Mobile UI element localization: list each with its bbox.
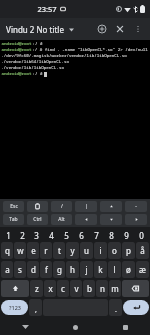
staticText: / bbox=[61, 203, 63, 210]
staticText: a bbox=[5, 264, 10, 275]
button[interactable]: Up bbox=[100, 201, 122, 212]
button[interactable]: . bbox=[109, 299, 122, 316]
button[interactable]: e bbox=[27, 242, 39, 259]
button[interactable]: d bbox=[27, 261, 39, 278]
button[interactable]: v bbox=[70, 280, 82, 297]
staticText: 23:57 bbox=[37, 4, 57, 14]
button[interactable]: 7 bbox=[89, 228, 104, 242]
button[interactable]: Paste bbox=[27, 201, 48, 212]
button[interactable]: 3 bbox=[29, 228, 44, 242]
button[interactable]: r bbox=[40, 242, 52, 259]
button[interactable]: i bbox=[94, 242, 107, 259]
staticText: Alt bbox=[58, 216, 65, 223]
staticText: i bbox=[99, 245, 102, 256]
button[interactable]: s bbox=[14, 261, 26, 278]
staticText: ?123 bbox=[9, 304, 21, 311]
button[interactable]: 0 bbox=[134, 228, 149, 242]
button[interactable]: - bbox=[125, 201, 147, 212]
button[interactable]: t bbox=[53, 242, 65, 259]
staticText: 3 bbox=[34, 230, 39, 241]
staticText: 1 bbox=[6, 230, 11, 241]
button[interactable]: 1 bbox=[1, 228, 15, 242]
button[interactable]: c bbox=[57, 280, 69, 297]
staticText: l bbox=[113, 264, 116, 275]
button[interactable]: m bbox=[109, 280, 121, 297]
button[interactable]: o bbox=[108, 242, 121, 259]
button[interactable]: w bbox=[14, 242, 26, 259]
staticText: o bbox=[112, 245, 117, 256]
button[interactable]: h bbox=[66, 261, 79, 278]
button[interactable]: k bbox=[94, 261, 107, 278]
button[interactable]: g bbox=[53, 261, 65, 278]
button[interactable]: , bbox=[29, 299, 42, 316]
staticText: j bbox=[85, 264, 88, 275]
button[interactable]: Tab bbox=[3, 214, 24, 225]
staticText: r bbox=[44, 245, 48, 256]
button[interactable]: a bbox=[1, 261, 13, 278]
button[interactable]: Close bbox=[111, 20, 129, 38]
button[interactable]: 5 bbox=[59, 228, 74, 242]
button[interactable]: 4 bbox=[44, 228, 59, 242]
staticText: y bbox=[70, 245, 75, 256]
staticText: . bbox=[115, 305, 117, 315]
staticText: 5 bbox=[64, 230, 69, 241]
button[interactable]: Ctrl bbox=[27, 214, 48, 225]
staticText: x bbox=[48, 283, 53, 294]
staticText: d bbox=[31, 264, 36, 275]
button[interactable]: Recents bbox=[100, 319, 150, 335]
button[interactable]: x bbox=[44, 280, 56, 297]
button[interactable]: More options bbox=[129, 20, 147, 38]
staticText: :/ # bbox=[32, 71, 43, 77]
button[interactable]: Vindu 2 No title bbox=[0, 20, 79, 39]
staticText: v bbox=[74, 283, 79, 294]
staticText: ø bbox=[126, 264, 131, 275]
staticText: 6 bbox=[79, 230, 84, 241]
button[interactable]: 6 bbox=[74, 228, 89, 242]
button[interactable]: q bbox=[1, 242, 13, 259]
button[interactable]: Home bbox=[50, 319, 100, 335]
button[interactable]: Backspace bbox=[122, 280, 149, 297]
button[interactable]: n bbox=[96, 280, 108, 297]
staticText: w bbox=[17, 245, 24, 256]
staticText: 4 bbox=[49, 230, 54, 241]
staticText: e bbox=[31, 245, 36, 256]
button[interactable]: New session bbox=[93, 20, 111, 38]
button[interactable]: b bbox=[83, 280, 95, 297]
button[interactable]: | bbox=[75, 201, 97, 212]
button[interactable]: Right bbox=[125, 214, 147, 225]
staticText: , bbox=[35, 305, 37, 315]
staticText: t bbox=[58, 245, 61, 256]
button[interactable]: Esc bbox=[3, 201, 24, 212]
button[interactable]: Alt bbox=[51, 214, 72, 225]
button[interactable]: z bbox=[30, 280, 43, 297]
button[interactable]: Enter bbox=[123, 300, 149, 315]
button[interactable]: ?123 bbox=[1, 300, 28, 315]
button[interactable]: j bbox=[80, 261, 93, 278]
staticText: | bbox=[85, 203, 88, 210]
staticText: android@root bbox=[1, 41, 32, 47]
button[interactable]: 9 bbox=[119, 228, 134, 242]
staticText: 8 bbox=[109, 230, 114, 241]
staticText: æ bbox=[139, 264, 146, 275]
staticText: Vindu 2 No title bbox=[6, 24, 64, 35]
button[interactable]: å bbox=[136, 242, 149, 259]
button[interactable]: Down bbox=[100, 214, 122, 225]
staticText: f bbox=[45, 264, 48, 275]
button[interactable]: Back bbox=[0, 319, 50, 335]
button[interactable]: / bbox=[51, 201, 72, 212]
button[interactable]: Left bbox=[75, 214, 97, 225]
button[interactable]: f bbox=[40, 261, 52, 278]
button[interactable]: ø bbox=[122, 261, 135, 278]
staticText: 2 bbox=[20, 230, 25, 241]
button[interactable]: u bbox=[80, 242, 93, 259]
button[interactable]: 8 bbox=[104, 228, 119, 242]
staticText: b bbox=[87, 283, 92, 294]
button[interactable]: Shift bbox=[1, 280, 29, 297]
button[interactable]: 2 bbox=[15, 228, 29, 242]
button[interactable]: y bbox=[66, 242, 79, 259]
button[interactable]: p bbox=[122, 242, 135, 259]
staticText: 9 bbox=[124, 230, 129, 241]
button[interactable]: l bbox=[108, 261, 121, 278]
button[interactable]: æ bbox=[136, 261, 149, 278]
